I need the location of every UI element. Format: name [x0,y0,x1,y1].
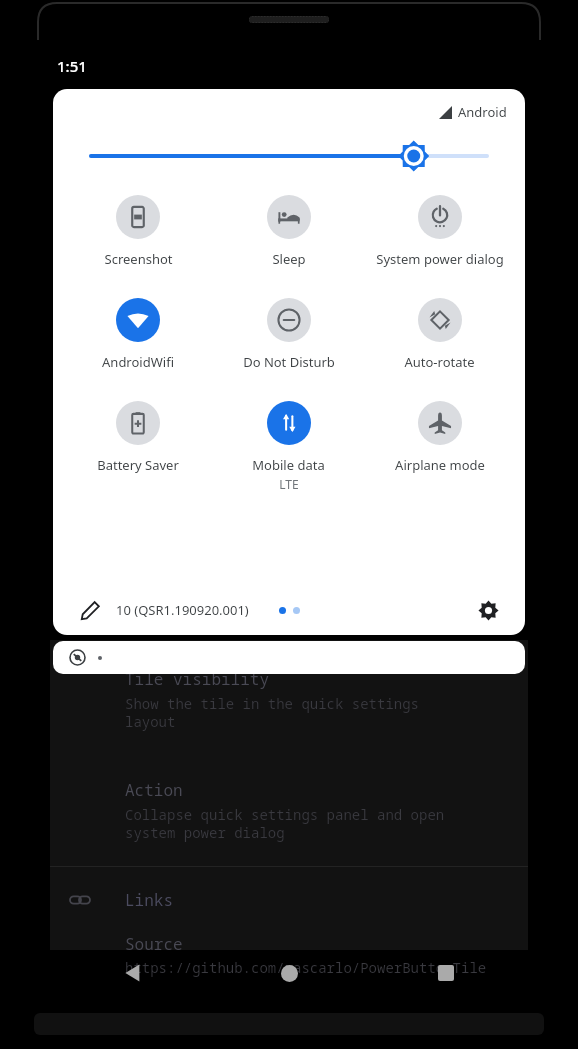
button[interactable] [53,641,525,674]
staticText: Collapse quick settings panel and open s… [125,805,445,842]
staticText: Do Not Disturb [243,353,335,371]
staticText: System power dialog [376,250,504,268]
button[interactable]: Settings [471,593,505,627]
staticText: Screenshot [104,250,173,268]
button[interactable]: Sleep [213,195,364,268]
staticText: 1:51 [57,56,87,76]
staticText: Links [125,889,174,911]
button[interactable]: Auto-rotate [364,298,515,371]
staticText: Source [125,933,183,955]
button[interactable]: System power dialog [364,195,515,268]
button[interactable]: Recents [422,949,470,997]
button[interactable]: Back [109,949,157,997]
button[interactable]: Home [265,949,313,997]
button[interactable]: Airplane mode [364,401,515,474]
button[interactable]: Mobile data [213,401,364,492]
button[interactable]: AndroidWifi [63,298,213,371]
staticText: Sleep [272,250,306,268]
staticText: AndroidWifi [102,353,174,371]
button[interactable]: Edit tiles [73,593,107,627]
staticText: https://github.com/rascarlo/PowerButtonT… [125,958,487,977]
staticText: Mobile data [252,456,325,474]
staticText: 10 (QSR1.190920.001) [116,601,249,619]
staticText: Airplane mode [395,456,485,474]
button[interactable]: Battery Saver [63,401,213,474]
button[interactable]: Do Not Disturb [213,298,364,371]
staticText: Tile visibility [125,668,270,690]
staticText: Action [125,779,183,801]
button[interactable]: Screenshot [63,195,213,268]
staticText: Show the tile in the quick settings layo… [125,694,419,731]
staticText: LTE [279,476,299,492]
staticText: Auto-rotate [404,353,475,371]
staticText: Android [458,103,507,121]
staticText: Battery Saver [97,456,179,474]
